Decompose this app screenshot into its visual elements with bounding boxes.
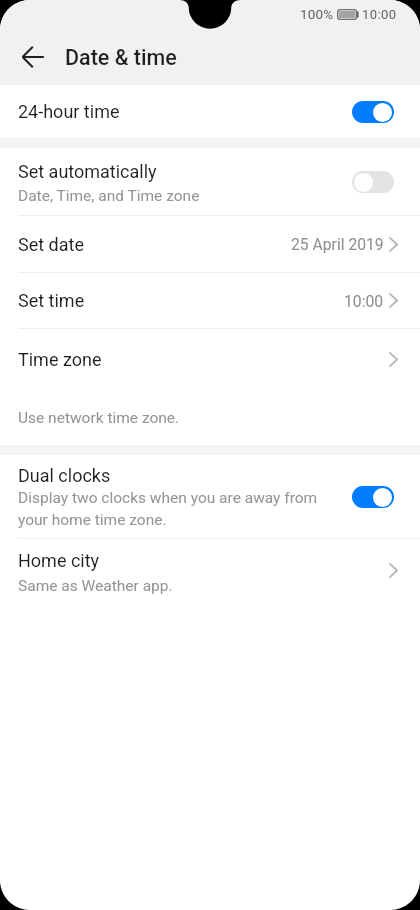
staticText: Dual clocks	[18, 465, 111, 486]
button[interactable]: Back	[10, 34, 55, 79]
button[interactable]: Dual clocks	[0, 455, 420, 538]
staticText: 24-hour time	[18, 101, 120, 122]
staticText: Display two clocks when you are away fro…	[18, 489, 318, 529]
staticText: Set time	[18, 290, 85, 311]
staticText: 25 April 2019	[291, 235, 384, 253]
staticText: Date, Time, and Time zone	[18, 187, 200, 205]
button[interactable]: Switch on	[352, 101, 394, 123]
staticText: Set date	[18, 234, 84, 255]
staticText: Home city	[18, 550, 100, 571]
staticText: Date & time	[65, 45, 177, 70]
button[interactable]: Switch on	[352, 486, 394, 508]
staticText: 100%	[300, 6, 334, 22]
staticText: 10:00	[344, 292, 384, 310]
button[interactable]: Set time	[0, 273, 420, 328]
staticText: Use network time zone.	[18, 409, 180, 427]
button[interactable]: 24-hour time	[0, 85, 420, 138]
button[interactable]: Time zone	[0, 329, 420, 389]
staticText: 10:00	[362, 7, 397, 22]
button[interactable]: Home city	[0, 539, 420, 601]
staticText: Time zone	[18, 349, 102, 370]
staticText: Set automatically	[18, 161, 157, 182]
staticText: Same as Weather app.	[18, 577, 173, 595]
button[interactable]: Switch off	[352, 171, 394, 193]
button[interactable]: Set automatically	[0, 148, 420, 215]
button[interactable]: Set date	[0, 216, 420, 272]
